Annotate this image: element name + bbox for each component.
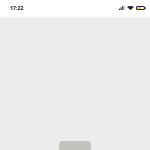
staticText: 17:22 <box>10 4 24 11</box>
button[interactable]: Bottom sheet handle <box>59 141 91 150</box>
